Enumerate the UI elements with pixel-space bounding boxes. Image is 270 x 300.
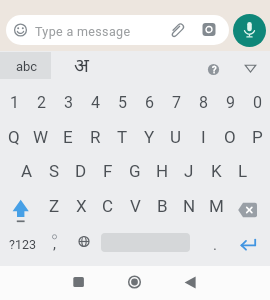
button[interactable]: T [109,124,135,150]
staticText: N [183,196,196,216]
button[interactable]: अ [68,53,94,81]
button[interactable]: N [176,193,202,219]
staticText: H [156,161,169,181]
button[interactable]: . [208,236,222,254]
staticText: Y [144,127,155,147]
button[interactable]: G [122,158,148,184]
staticText: L [238,161,248,181]
button[interactable]: V [122,193,148,219]
staticText: O [224,127,236,147]
button[interactable]: ?123 [5,233,39,255]
button[interactable]: abc [12,55,42,77]
staticText: S [49,161,60,181]
button[interactable]: Z [41,193,67,219]
button[interactable]: 3 [55,89,81,115]
staticText: C [102,196,114,216]
staticText: R [90,127,101,147]
button[interactable]: Y [136,124,162,150]
button[interactable] [232,195,264,223]
staticText: abc [16,59,38,74]
staticText: U [170,127,182,147]
staticText: 7 [172,93,181,112]
button[interactable]: B [149,193,175,219]
staticText: Type a message [35,24,131,39]
staticText: Q [8,127,20,147]
button[interactable] [195,55,231,83]
staticText: 3 [64,93,73,112]
button[interactable]: D [68,158,94,184]
button[interactable]: 7 [163,89,189,115]
button[interactable]: 1 [1,89,27,115]
button[interactable]: K [203,158,229,184]
staticText: E [63,127,73,147]
button[interactable]: A [14,158,40,184]
staticText: W [33,127,49,147]
button[interactable]: E [55,124,81,150]
button[interactable] [234,232,264,257]
button[interactable]: C [95,193,121,219]
button[interactable] [118,270,151,295]
staticText: 8 [199,93,208,112]
staticText: . [213,236,217,254]
staticText: 0 [253,93,262,112]
staticText: 1 [10,93,19,112]
button[interactable]: O [217,124,243,150]
button[interactable]: 5 [109,89,135,115]
staticText: 9 [226,93,235,112]
staticText: D [75,161,87,181]
staticText: 2 [37,93,46,112]
button[interactable]: 4 [82,89,108,115]
button[interactable]: 8 [190,89,216,115]
staticText: 6 [145,93,154,112]
staticText: X [76,196,87,216]
button[interactable]: U [163,124,189,150]
staticText: G [129,161,141,181]
staticText: K [211,161,222,181]
staticText: J [184,161,194,181]
button[interactable]: F [95,158,121,184]
staticText: ? [212,64,217,75]
button[interactable] [235,55,267,83]
staticText: B [157,196,168,216]
staticText: A [21,161,33,181]
button[interactable]: J [176,158,202,184]
staticText: अ [74,55,89,80]
button[interactable]: I [190,124,216,150]
button[interactable]: 6 [136,89,162,115]
staticText: 4 [91,93,100,112]
button[interactable] [62,270,95,295]
button[interactable]: L [230,158,256,184]
button[interactable]: 0 [244,89,270,115]
staticText: T [117,127,128,147]
button[interactable]: 2 [28,89,54,115]
button[interactable] [4,192,38,222]
button[interactable] [0,52,51,79]
button[interactable]: H [149,158,175,184]
button[interactable]: W [28,124,54,150]
button[interactable]: P [244,124,270,150]
button[interactable]: M [203,193,229,219]
button[interactable]: S [41,158,67,184]
staticText: , [53,235,56,253]
button[interactable] [233,14,266,47]
staticText: 5 [118,93,127,112]
button[interactable] [70,230,98,255]
staticText: V [130,196,141,216]
staticText: P [252,127,263,147]
staticText: ?123 [9,237,36,252]
staticText: Z [49,196,60,216]
staticText: F [103,161,113,181]
button[interactable]: , [47,235,61,253]
staticText: I [201,127,206,147]
button[interactable] [174,270,207,295]
button[interactable]: R [82,124,108,150]
button[interactable]: X [68,193,94,219]
staticText: M [209,196,224,216]
button[interactable]: 9 [217,89,243,115]
button[interactable]: Q [1,124,27,150]
button[interactable] [6,15,229,45]
